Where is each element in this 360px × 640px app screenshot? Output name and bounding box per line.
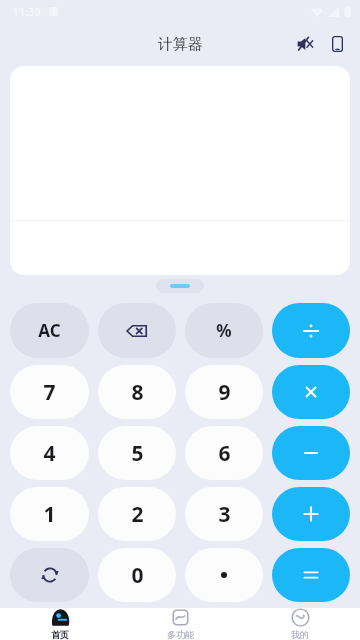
button[interactable]: 9 [185,365,263,419]
button[interactable]: 3 [185,487,263,541]
button[interactable]: % [185,303,263,358]
staticText: 8 [131,378,144,407]
staticText: 计算器 [158,35,203,54]
staticText: 6 [218,439,231,468]
staticText: 1 [43,500,56,529]
button[interactable]: 6 [185,426,263,480]
staticText: 9 [218,378,231,407]
button[interactable]: 8 [98,365,176,419]
button[interactable]: 首页 [0,608,120,640]
staticText: % [216,319,232,342]
button[interactable]: Plus [272,487,350,541]
button[interactable]: Divide [272,303,350,358]
button[interactable]: Multiply [272,365,350,419]
button[interactable]: Expand history [156,279,204,293]
button[interactable]: Device [324,31,350,57]
button[interactable] [185,548,263,602]
button[interactable]: 0 [98,548,176,602]
button[interactable]: Backspace [98,303,176,358]
staticText: 多功能 [167,629,194,640]
staticText: 3 [218,500,231,529]
button[interactable]: Minus [272,426,350,480]
button[interactable]: AC [10,303,89,358]
button[interactable]: Swap [10,548,89,602]
button[interactable]: 多功能 [120,608,240,640]
staticText: 首页 [51,629,69,640]
staticText: 4 [43,439,56,468]
staticText: AC [38,319,61,342]
staticText: 2 [131,500,144,529]
staticText: 5 [131,439,144,468]
button[interactable]: 我的 [240,608,360,640]
button[interactable]: Mute [292,31,318,57]
button[interactable]: 2 [98,487,176,541]
staticText: 7 [43,378,56,407]
button[interactable]: 1 [10,487,89,541]
staticText: 11:39 [12,4,41,19]
button[interactable]: 4 [10,426,89,480]
button[interactable]: 7 [10,365,89,419]
staticText: 我的 [291,629,309,640]
button[interactable]: 5 [98,426,176,480]
button[interactable]: Equals [272,548,350,602]
staticText: 0 [131,561,144,590]
